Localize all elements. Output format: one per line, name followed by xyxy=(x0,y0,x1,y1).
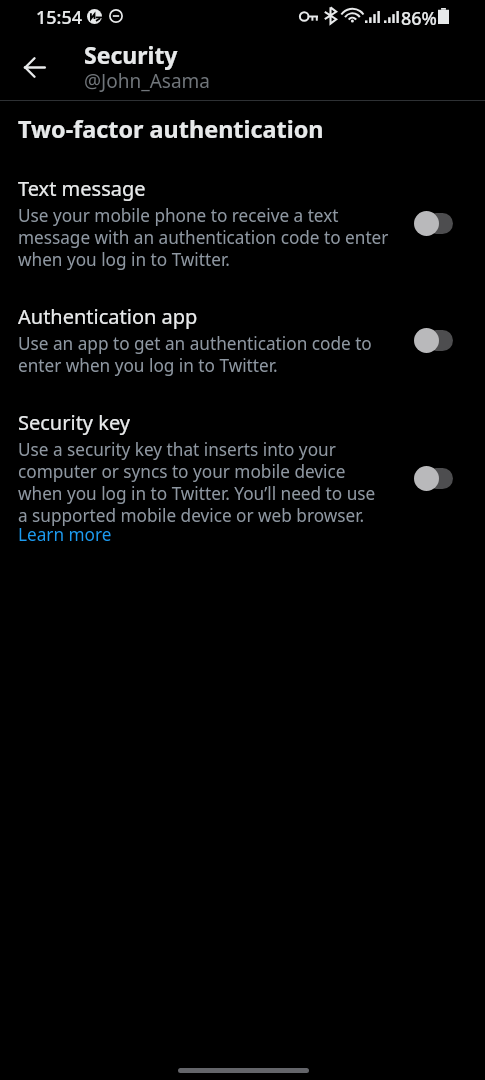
button[interactable]: Turn on Authentication app xyxy=(414,327,453,353)
staticText: Two-factor authentication xyxy=(18,113,324,145)
button[interactable]: Turn on Text message xyxy=(414,210,453,236)
staticText: 86% xyxy=(401,6,437,31)
button[interactable]: Text message xyxy=(0,175,485,279)
button[interactable]: Security key xyxy=(0,409,485,557)
staticText: Use an app to get an authentication code… xyxy=(18,332,372,377)
staticText: @John_Asama xyxy=(84,68,211,94)
staticText: Security xyxy=(84,39,178,70)
button[interactable]: Authentication app xyxy=(0,303,485,389)
button[interactable]: Turn on Security key xyxy=(414,465,453,491)
button[interactable]: Learn more xyxy=(18,523,112,546)
staticText: Security key xyxy=(18,409,131,436)
staticText: 15:54 xyxy=(36,5,83,30)
button[interactable]: Back xyxy=(10,42,58,90)
staticText: Text message xyxy=(18,175,146,202)
staticText: Authentication app xyxy=(18,303,198,330)
staticText: Use a security key that inserts into you… xyxy=(18,438,376,527)
staticText: Use your mobile phone to receive a text … xyxy=(18,204,389,271)
